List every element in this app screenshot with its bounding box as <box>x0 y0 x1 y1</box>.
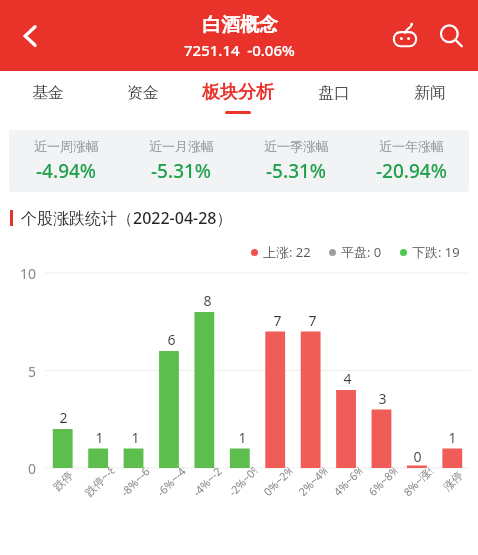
staticText: -6%~-4% <box>153 463 189 500</box>
button[interactable]: 资金 <box>95 71 190 124</box>
staticText: 3 <box>378 389 387 408</box>
staticText: 白酒概念 <box>202 13 278 37</box>
staticText: -8%~-6% <box>117 463 153 500</box>
staticText: 8%~涨停 <box>400 464 435 499</box>
staticText: 资金 <box>127 83 159 103</box>
button[interactable]: AI assistant <box>382 13 428 59</box>
staticText: 1 <box>95 428 104 447</box>
staticText: 7 <box>273 311 282 330</box>
button[interactable]: 新闻 <box>382 71 478 124</box>
button[interactable]: 板块分析 <box>190 71 286 124</box>
staticText: 涨停 <box>440 468 466 494</box>
staticText: 近一季涨幅 <box>264 138 329 154</box>
staticText: 2 <box>59 408 68 427</box>
staticText: 7 <box>308 311 317 330</box>
button[interactable]: Back <box>6 12 54 60</box>
staticText: 新闻 <box>414 83 446 103</box>
button[interactable]: 近一月涨幅 <box>124 138 239 184</box>
staticText: 平盘: 0 <box>341 243 382 261</box>
staticText: 6%~8% <box>365 464 400 499</box>
staticText: -4%~-2% <box>189 463 225 500</box>
staticText: 10 <box>20 264 37 283</box>
button[interactable]: 近一季涨幅 <box>239 138 354 184</box>
button[interactable]: 盘口 <box>286 71 382 124</box>
staticText: 4 <box>343 369 352 388</box>
staticText: -4.94% <box>36 158 97 184</box>
staticText: 个股涨跌统计（2022-04-28） <box>21 207 233 229</box>
staticText: 跌停~-8% <box>81 463 117 500</box>
staticText: 下跌: 19 <box>412 243 460 261</box>
staticText: 近一周涨幅 <box>34 138 99 154</box>
staticText: 近一月涨幅 <box>149 138 214 154</box>
staticText: 6 <box>167 330 176 349</box>
staticText: -5.31% <box>151 158 212 184</box>
staticText: 1 <box>131 428 140 447</box>
staticText: 近一年涨幅 <box>379 138 444 154</box>
staticText: 2%~4% <box>295 464 330 499</box>
staticText: 盘口 <box>318 83 350 103</box>
staticText: 7251.14 -0.06% <box>184 40 295 60</box>
staticText: -2%~0% <box>225 464 260 499</box>
button[interactable]: 基金 <box>0 71 95 124</box>
staticText: 跌停 <box>50 468 76 494</box>
staticText: -20.94% <box>376 158 447 184</box>
staticText: -5.31% <box>266 158 327 184</box>
staticText: 1 <box>238 428 247 447</box>
button[interactable]: 近一周涨幅 <box>9 138 124 184</box>
staticText: 8 <box>203 291 212 310</box>
staticText: 0%~2% <box>260 464 295 499</box>
staticText: 0 <box>413 447 422 466</box>
staticText: 板块分析 <box>202 81 274 104</box>
button[interactable]: Search <box>428 13 474 59</box>
button[interactable]: 近一年涨幅 <box>354 138 469 184</box>
staticText: 4%~6% <box>330 464 365 499</box>
staticText: 上涨: 22 <box>263 243 311 261</box>
staticText: 0 <box>28 459 37 478</box>
staticText: 1 <box>448 428 457 447</box>
staticText: 基金 <box>32 83 64 103</box>
staticText: 5 <box>28 362 37 381</box>
